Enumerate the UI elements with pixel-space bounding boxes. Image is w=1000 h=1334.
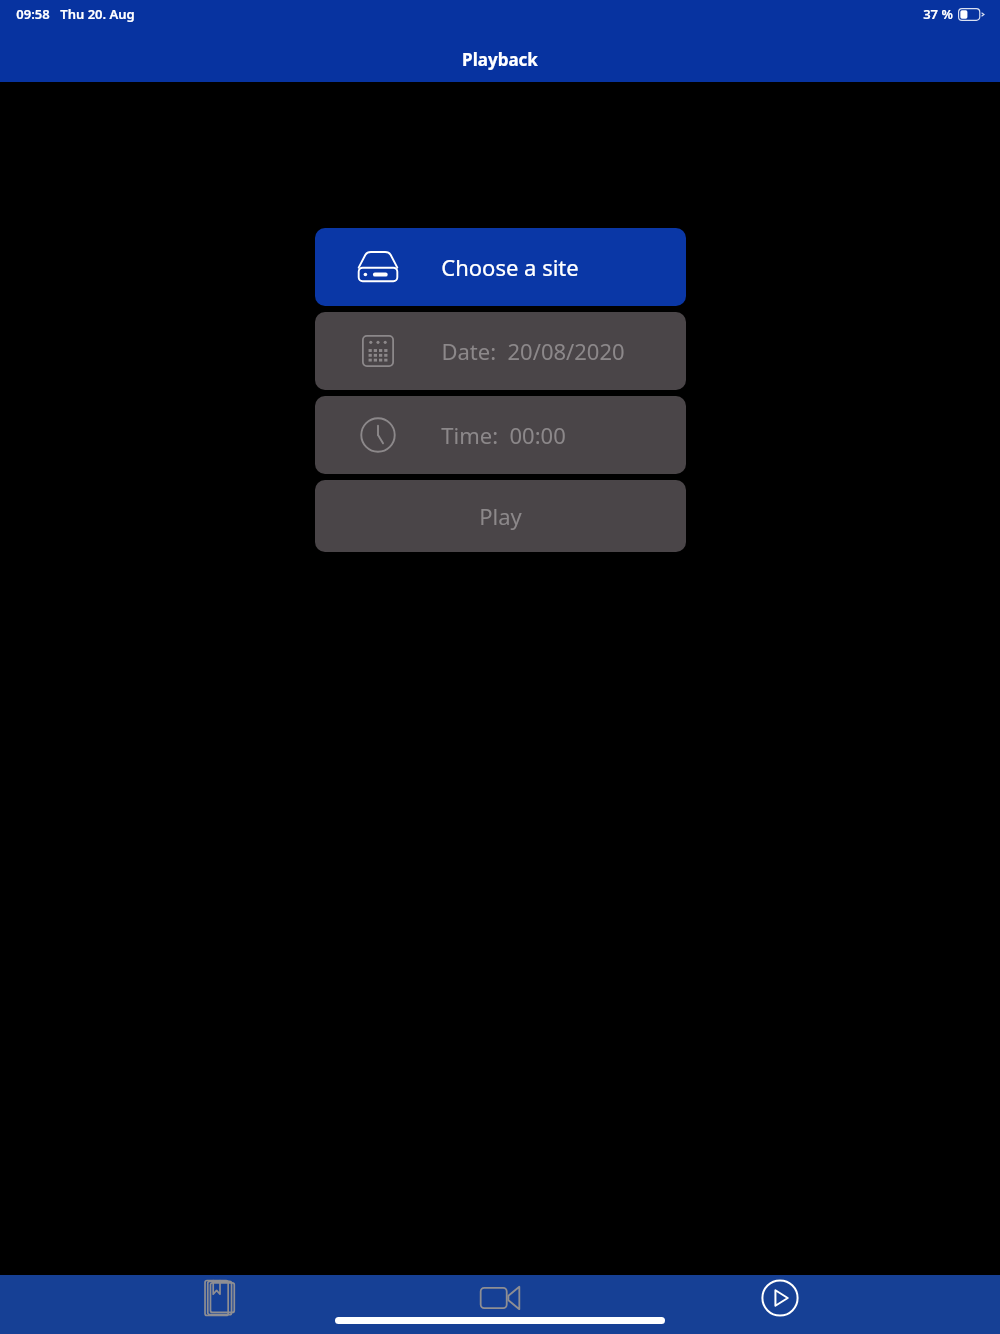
staticText: Playback	[462, 48, 538, 71]
staticText: Date: 20/08/2020	[441, 336, 625, 366]
button[interactable]: Time: 00:00	[315, 396, 686, 474]
button[interactable]: Playback	[720, 1275, 840, 1321]
button[interactable]: Library	[160, 1275, 280, 1321]
staticText: Time: 00:00	[441, 420, 566, 450]
staticText: Play	[479, 501, 522, 531]
staticText: 09:58	[16, 5, 50, 23]
button[interactable]: Date: 20/08/2020	[315, 312, 686, 390]
button[interactable]: Live view	[440, 1275, 560, 1321]
staticText: Thu 20. Aug	[60, 5, 135, 23]
button[interactable]: Choose a site	[315, 228, 686, 306]
button[interactable]: Play	[315, 480, 686, 552]
staticText: 37 %	[923, 5, 953, 23]
staticText: Choose a site	[441, 252, 579, 282]
